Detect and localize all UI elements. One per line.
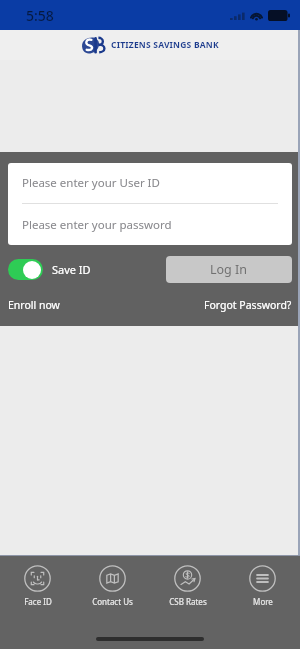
staticText: Please enter your User ID xyxy=(22,175,160,191)
button[interactable]: Enroll now xyxy=(8,296,60,314)
staticText: Log In xyxy=(210,261,248,278)
staticText: Contact Us xyxy=(92,596,133,607)
staticText: CITIZENS SAVINGS BANK xyxy=(111,39,219,51)
button[interactable]: CSB Rates xyxy=(150,565,225,607)
button[interactable]: Forgot Password? xyxy=(204,296,292,314)
button[interactable]: Save ID xyxy=(8,259,91,280)
staticText: Save ID xyxy=(52,262,91,277)
button[interactable]: Log In xyxy=(166,256,292,283)
staticText: 5:58 xyxy=(26,6,54,25)
button[interactable]: Please enter your password xyxy=(8,204,292,245)
staticText: CSB Rates xyxy=(169,596,207,607)
staticText: Face ID xyxy=(24,596,52,607)
button[interactable]: Please enter your User ID xyxy=(8,163,292,203)
staticText: Enroll now xyxy=(8,298,60,312)
button[interactable]: Contact Us xyxy=(75,565,150,607)
staticText: Forgot Password? xyxy=(204,298,292,312)
button[interactable]: Face ID xyxy=(0,565,75,607)
staticText: More xyxy=(253,596,273,607)
staticText: Please enter your password xyxy=(22,217,172,233)
button[interactable]: More xyxy=(225,565,300,607)
